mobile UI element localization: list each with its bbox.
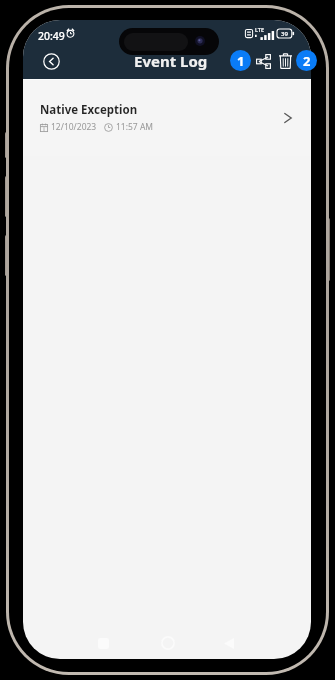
staticText: Event Log xyxy=(134,51,208,71)
staticText: 39 xyxy=(281,30,288,38)
button[interactable]: Share xyxy=(249,47,277,75)
staticText: Native Exception xyxy=(40,102,138,118)
button[interactable]: Delete xyxy=(271,47,299,75)
staticText: 12/10/2023 xyxy=(51,121,97,133)
staticText: LTE xyxy=(255,26,264,33)
staticText: 1 xyxy=(237,52,245,70)
button[interactable]: Native Exception xyxy=(23,79,311,156)
staticText: 2 xyxy=(303,52,311,70)
staticText: 20:49 xyxy=(38,29,65,43)
button[interactable]: Back xyxy=(37,47,65,75)
staticText: 11:57 AM xyxy=(116,121,154,133)
